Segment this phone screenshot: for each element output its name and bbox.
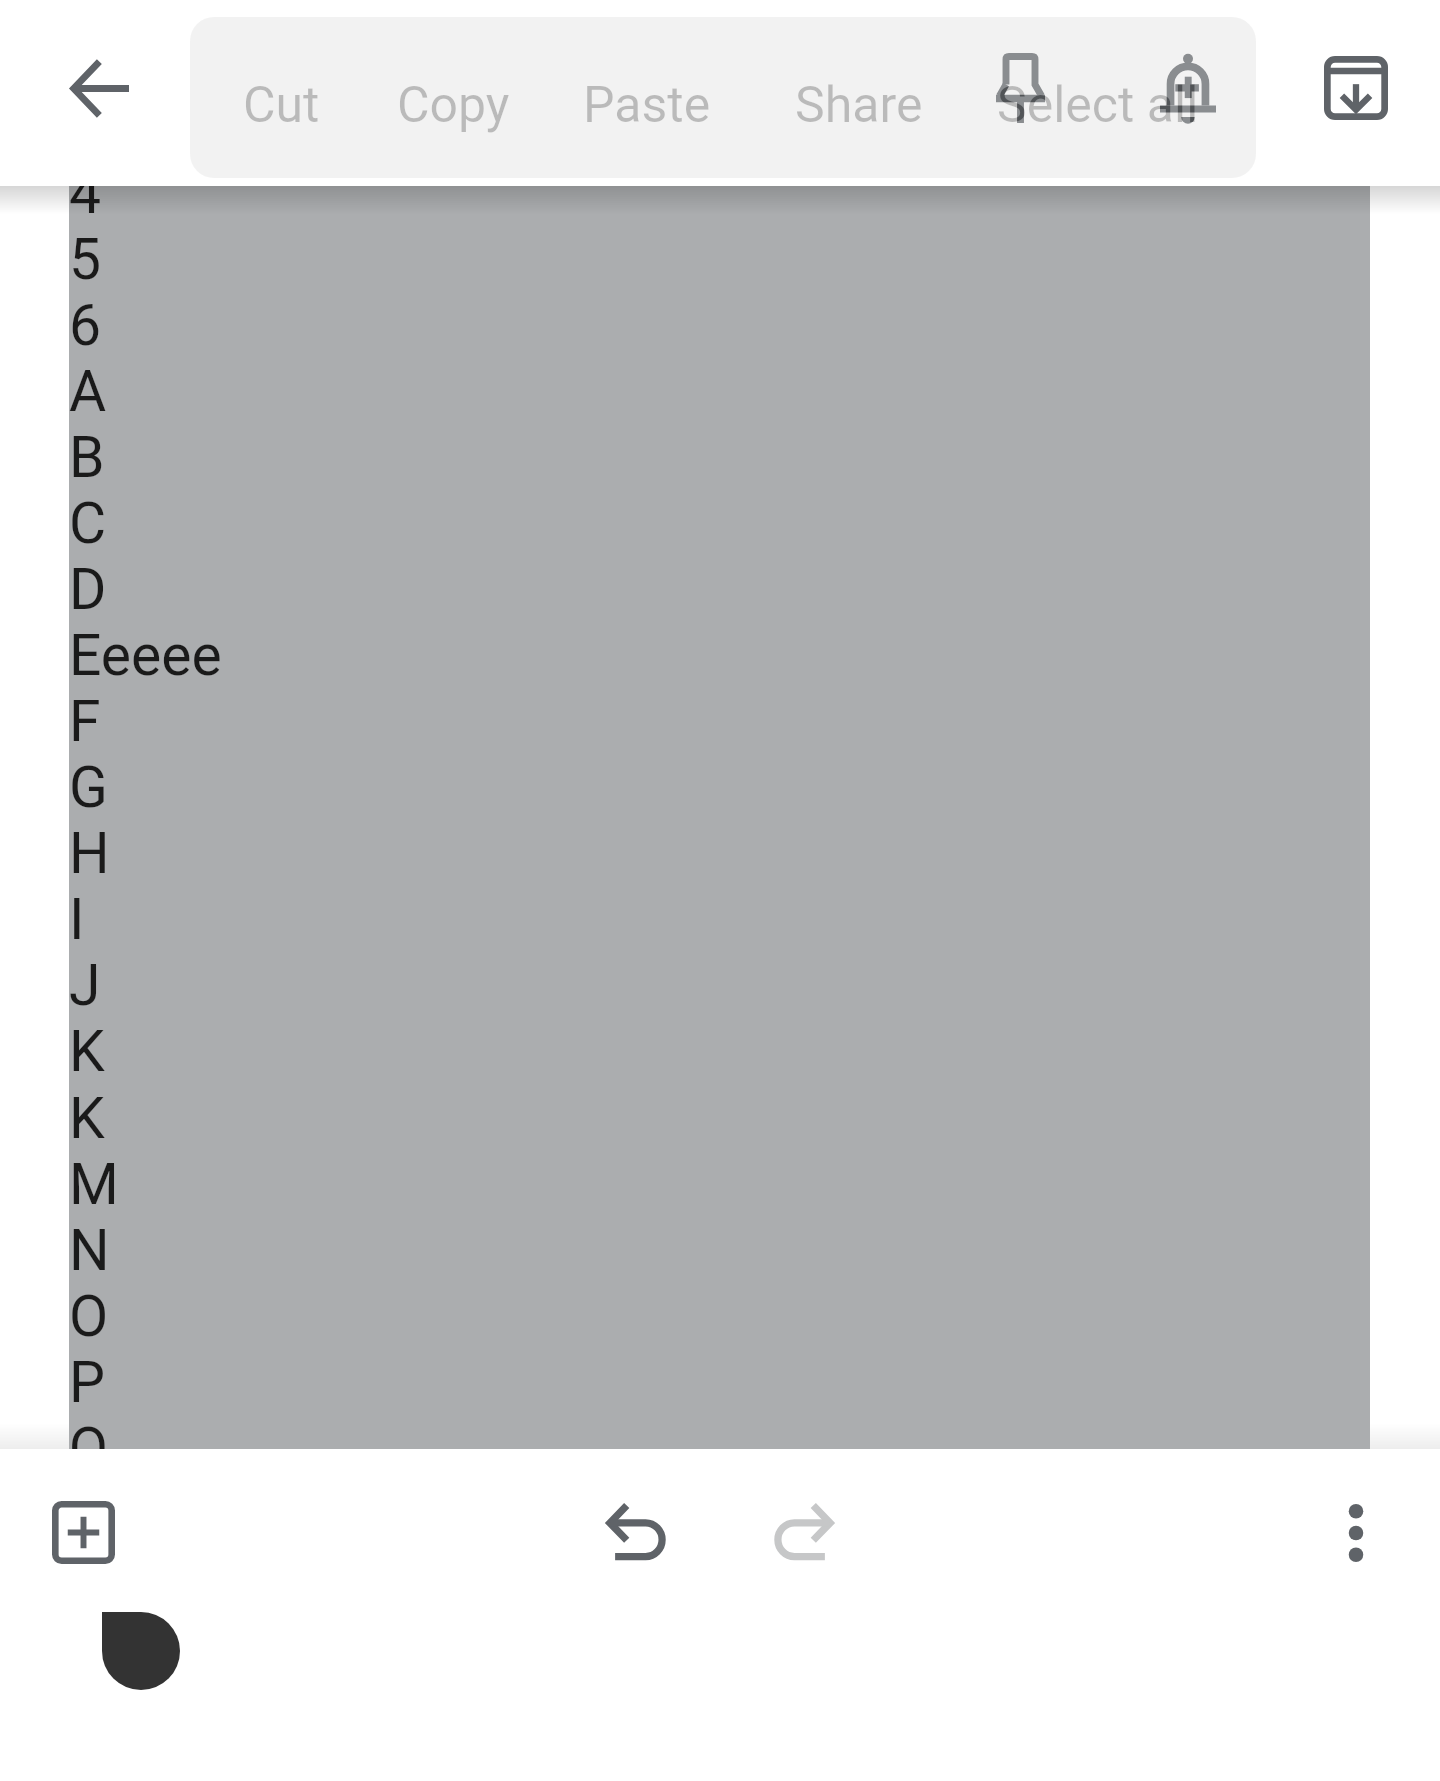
button[interactable]: Select all xyxy=(965,17,1230,178)
staticText: N xyxy=(69,1217,110,1284)
staticText: H xyxy=(69,820,110,887)
staticText: J xyxy=(69,952,101,1019)
button[interactable]: Copy xyxy=(374,17,532,178)
staticText: Eeeee xyxy=(69,622,222,689)
staticText: Share xyxy=(795,76,923,135)
button[interactable]: Archive xyxy=(1298,30,1414,146)
staticText: P xyxy=(69,1349,105,1416)
staticText: Copy xyxy=(397,76,510,135)
staticText: Cut xyxy=(243,76,320,135)
staticText: Select all xyxy=(997,76,1199,135)
staticText: O xyxy=(69,1283,109,1350)
button[interactable]: Add xyxy=(25,1474,141,1590)
button[interactable]: Redo xyxy=(746,1473,862,1589)
staticText: Q xyxy=(69,1415,109,1449)
staticText: K xyxy=(69,1085,105,1152)
button[interactable]: Share xyxy=(772,17,945,178)
staticText: K xyxy=(69,1018,105,1085)
button[interactable]: Undo xyxy=(578,1473,694,1589)
staticText: G xyxy=(69,754,108,821)
staticText: 4 xyxy=(69,186,102,227)
button[interactable]: Paste xyxy=(560,17,734,178)
staticText: D xyxy=(69,556,107,623)
button[interactable]: Add reminder xyxy=(1130,30,1246,146)
button[interactable]: Cut xyxy=(219,17,344,178)
other: Selected note text xyxy=(69,186,1370,1449)
staticText: M xyxy=(69,1151,119,1218)
staticText: Paste xyxy=(583,76,711,135)
staticText: 5 xyxy=(69,226,102,293)
staticText: C xyxy=(69,490,107,557)
staticText: I xyxy=(69,886,85,953)
staticText: 6 xyxy=(69,292,102,359)
staticText: F xyxy=(69,688,101,755)
button[interactable]: Pin xyxy=(962,30,1078,146)
staticText: A xyxy=(69,358,107,425)
staticText: B xyxy=(69,424,105,491)
button[interactable]: Back xyxy=(42,30,158,146)
button[interactable]: More options xyxy=(1298,1475,1414,1591)
